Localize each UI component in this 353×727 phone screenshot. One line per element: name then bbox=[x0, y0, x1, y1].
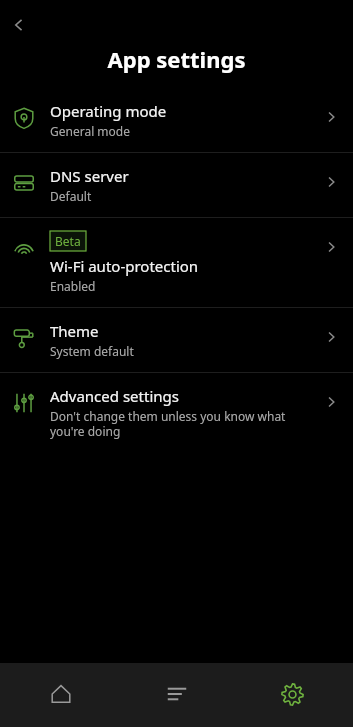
staticText: Beta bbox=[55, 233, 81, 249]
button[interactable]: Beta bbox=[0, 218, 353, 307]
button[interactable]: Settings bbox=[237, 663, 347, 727]
staticText: App settings bbox=[0, 44, 353, 74]
staticText: Operating mode bbox=[50, 101, 167, 121]
button[interactable]: Advanced settings bbox=[0, 373, 353, 452]
staticText: Theme bbox=[50, 321, 99, 341]
button[interactable]: Log bbox=[122, 663, 232, 727]
button[interactable]: Operating mode bbox=[0, 88, 353, 152]
staticText: System default bbox=[50, 343, 134, 359]
staticText: Wi-Fi auto-protection bbox=[50, 256, 199, 276]
button[interactable]: DNS server bbox=[0, 153, 353, 217]
staticText: Advanced settings bbox=[50, 386, 179, 406]
staticText: Default bbox=[50, 188, 92, 204]
staticText: Don't change them unless you know what y… bbox=[50, 408, 286, 439]
staticText: Enabled bbox=[50, 278, 96, 294]
button[interactable]: Back bbox=[2, 8, 36, 42]
staticText: DNS server bbox=[50, 166, 129, 186]
button[interactable]: Theme bbox=[0, 308, 353, 372]
staticText: General mode bbox=[50, 123, 130, 139]
button[interactable]: Home bbox=[6, 663, 116, 727]
